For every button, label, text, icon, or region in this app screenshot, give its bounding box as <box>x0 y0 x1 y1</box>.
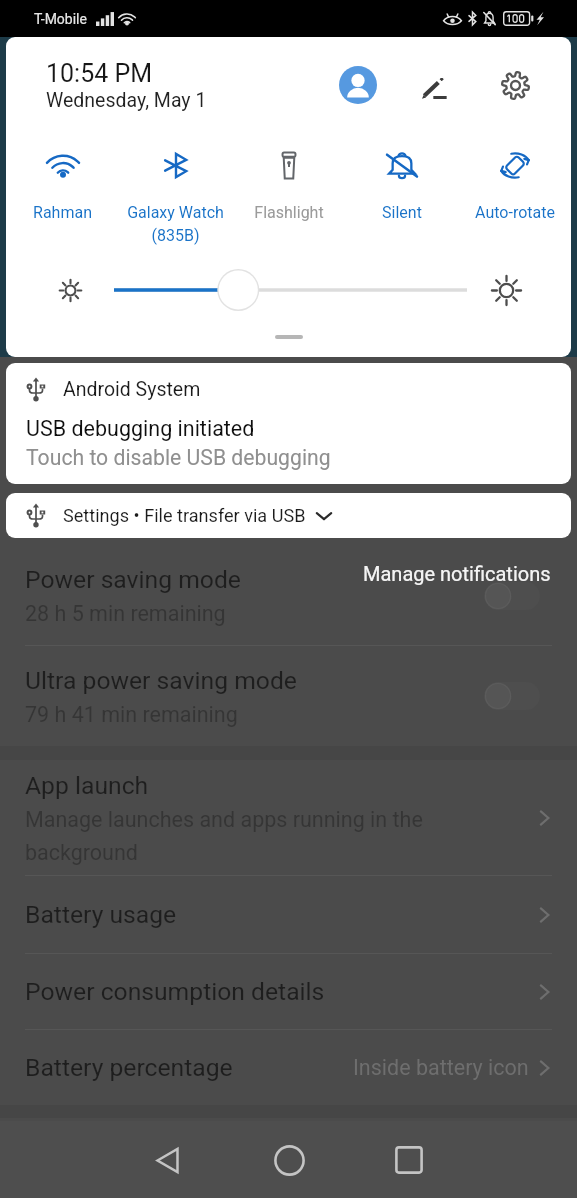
button[interactable]: Power saving mode toggle <box>482 579 542 613</box>
button[interactable]: Battery usage <box>0 876 577 953</box>
button[interactable]: Android System <box>6 363 571 484</box>
button[interactable]: Ultra power saving mode <box>0 646 577 746</box>
button[interactable]: Brightness <box>114 268 467 312</box>
staticText: Wednesday, May 1 <box>46 89 207 112</box>
button[interactable]: Auto-rotate <box>458 152 571 222</box>
button[interactable]: Expand <box>275 335 303 339</box>
button[interactable]: Settings <box>496 66 534 104</box>
staticText: Auto-rotate <box>475 203 555 222</box>
staticText: Silent <box>382 203 422 222</box>
staticText: Power consumption details <box>25 977 325 1006</box>
staticText: Touch to disable USB debugging <box>26 445 331 470</box>
staticText: 10:54 PM <box>46 59 153 88</box>
button[interactable]: Flashlight <box>232 152 345 222</box>
button[interactable]: App launch <box>0 760 577 875</box>
staticText: Flashlight <box>254 203 324 222</box>
button[interactable]: Settings • File transfer via USB <box>6 493 571 538</box>
staticText: Rahman <box>33 203 92 222</box>
button[interactable]: Galaxy Watch (835B) <box>119 152 232 245</box>
button[interactable]: Recent apps <box>379 1130 439 1190</box>
staticText: Galaxy Watch (835B) <box>127 203 224 245</box>
button[interactable]: User account <box>339 66 377 104</box>
staticText: Ultra power saving mode <box>25 666 297 695</box>
staticText: Manage launches and apps running in the … <box>25 807 423 865</box>
button[interactable]: Battery percentage <box>0 1030 577 1105</box>
button[interactable]: Power saving mode <box>0 546 577 645</box>
staticText: Power saving mode <box>25 565 241 594</box>
button[interactable]: Back <box>137 1130 197 1190</box>
button[interactable]: Lower brightness <box>52 272 88 308</box>
button[interactable]: Power consumption details <box>0 954 577 1029</box>
staticText: App launch <box>25 771 149 800</box>
button[interactable]: Raise brightness <box>487 271 525 309</box>
button[interactable]: Manage notifications <box>363 562 577 585</box>
staticText: Inside battery icon <box>353 1055 529 1080</box>
button[interactable]: Rahman <box>6 152 119 222</box>
staticText: 28 h 5 min remaining <box>25 601 226 626</box>
staticText: 79 h 41 min remaining <box>25 702 238 727</box>
staticText: Android System <box>63 378 201 401</box>
staticText: Battery usage <box>25 900 177 929</box>
staticText: Settings • File transfer via USB <box>63 505 306 526</box>
staticText: Battery percentage <box>25 1053 233 1082</box>
button[interactable]: Edit <box>416 66 454 104</box>
button[interactable]: Silent <box>345 152 458 222</box>
button[interactable]: Home <box>259 1130 319 1190</box>
staticText: USB debugging initiated <box>26 416 255 441</box>
staticText: T-Mobile <box>34 11 87 27</box>
button[interactable]: Ultra power saving mode toggle <box>482 679 542 713</box>
